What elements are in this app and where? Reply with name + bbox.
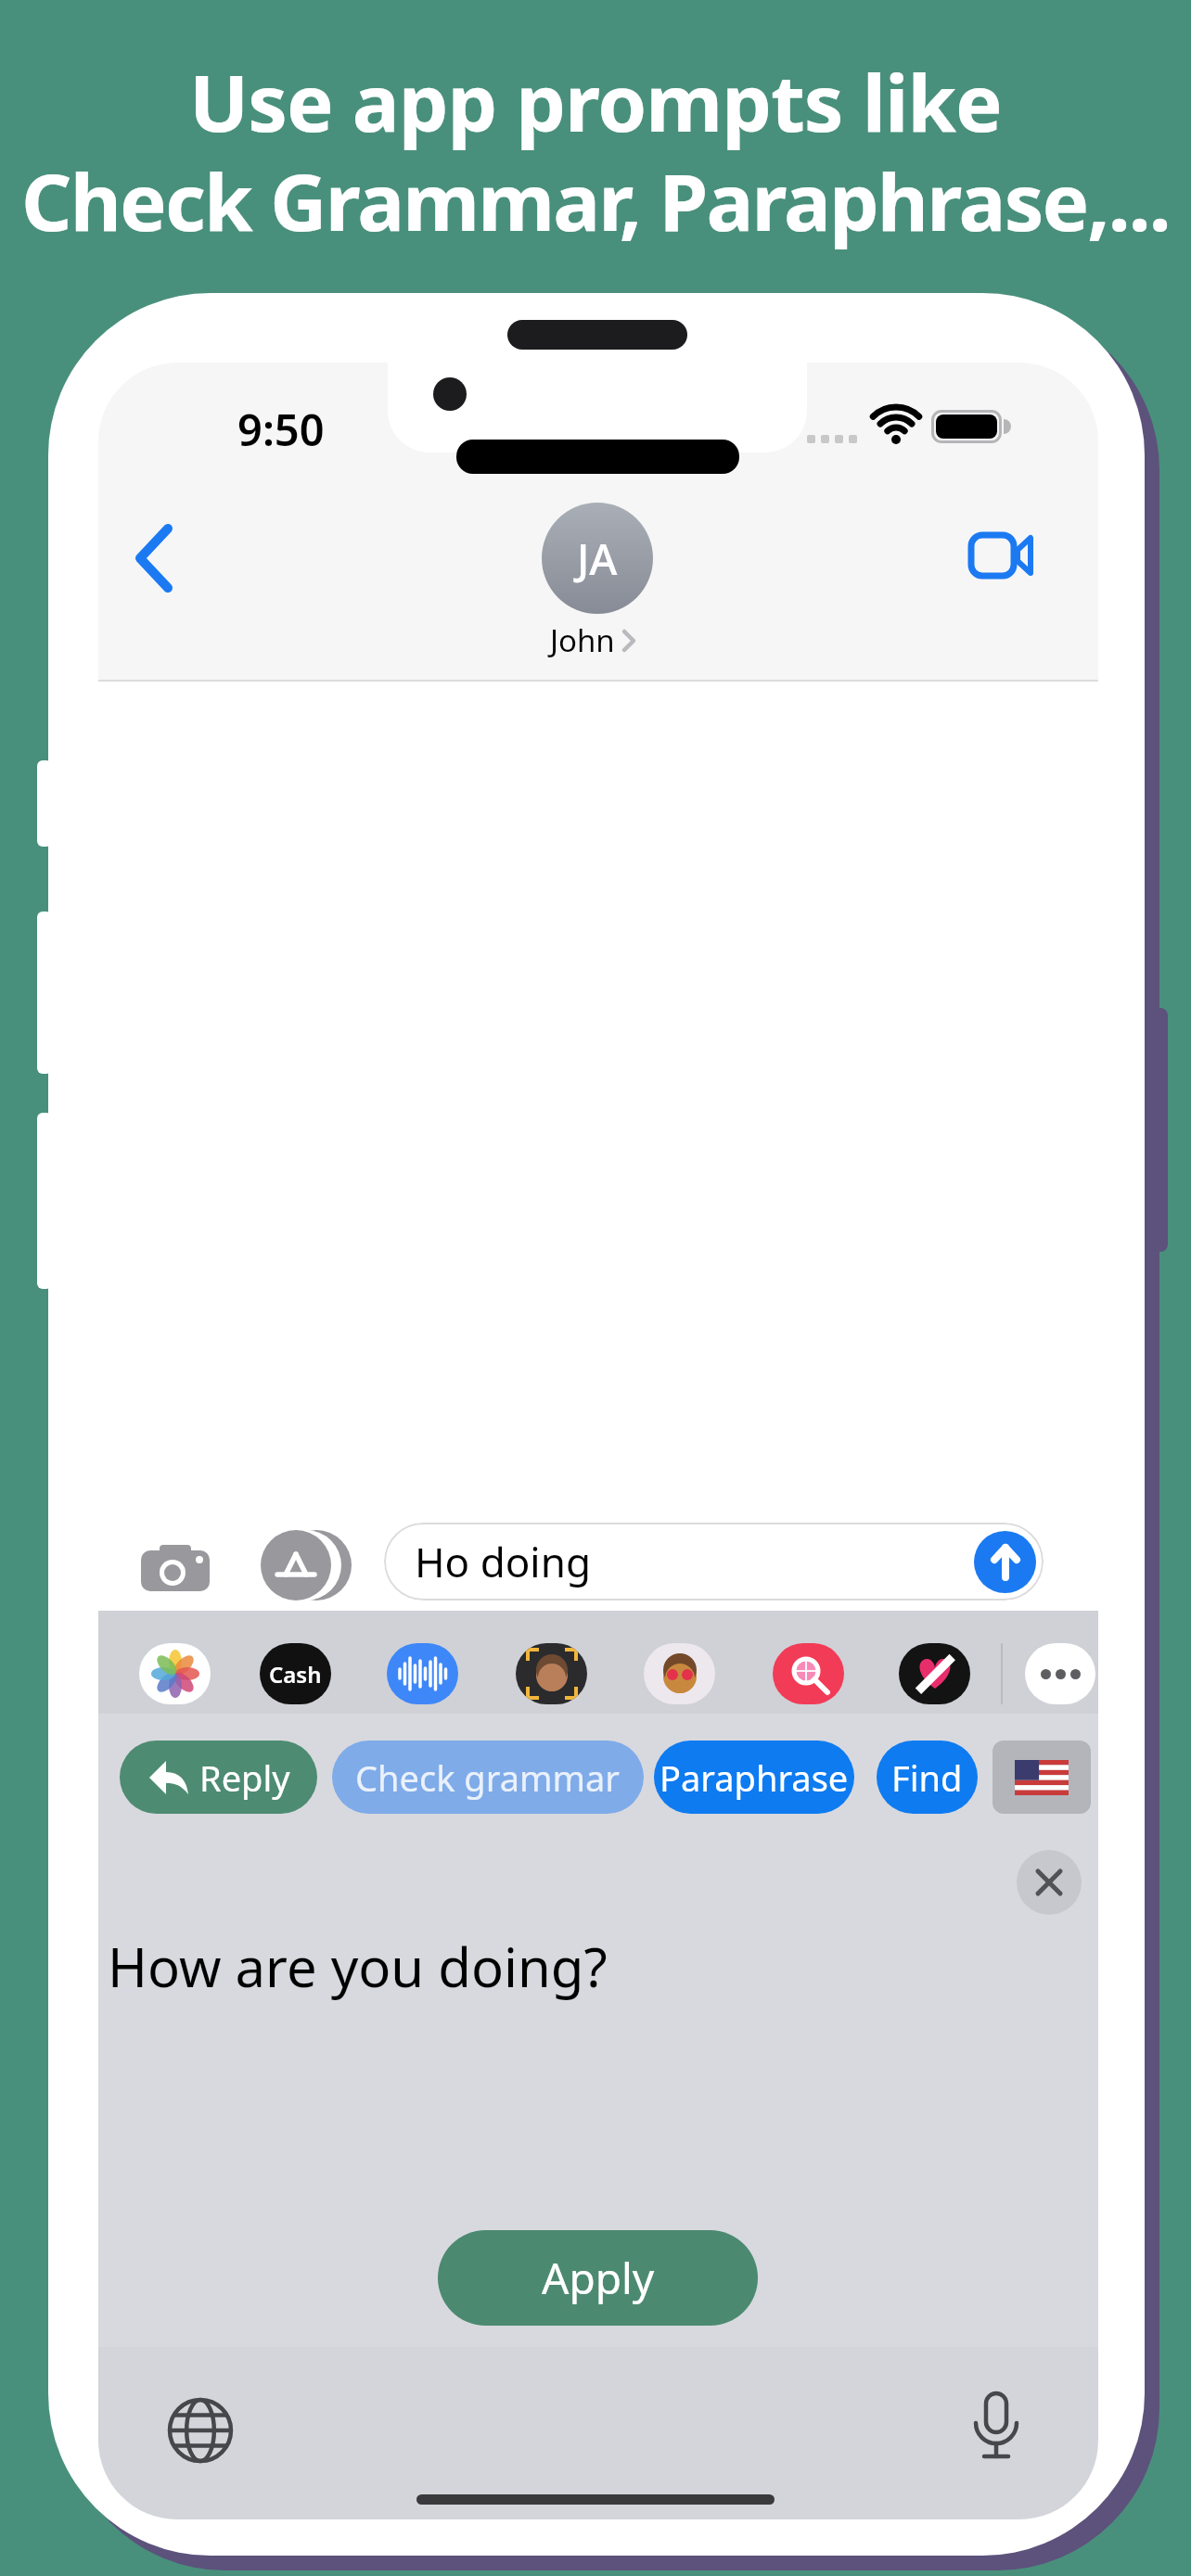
button[interactable] — [773, 1643, 844, 1704]
button[interactable] — [899, 1643, 970, 1704]
staticText: Ho doing — [415, 1534, 591, 1589]
button[interactable]: Reply — [120, 1741, 317, 1814]
staticText: Cash — [269, 1659, 322, 1690]
button[interactable] — [1017, 1850, 1082, 1915]
staticText: How are you doing? — [108, 1930, 608, 2003]
button[interactable]: Check grammar — [332, 1741, 644, 1814]
button[interactable]: Cash — [260, 1643, 331, 1704]
button[interactable] — [974, 1531, 1036, 1593]
staticText: 9:50 — [237, 400, 325, 459]
staticText: Check Grammar, Paraphrase,... — [21, 147, 1170, 254]
staticText: Find — [891, 1753, 963, 1802]
button[interactable] — [117, 511, 191, 604]
button[interactable] — [126, 1529, 224, 1608]
button[interactable] — [1025, 1643, 1095, 1704]
button[interactable] — [387, 1643, 458, 1704]
staticText: Apply — [542, 2249, 655, 2307]
button[interactable]: Ho doing — [384, 1523, 1044, 1600]
button[interactable]: Apply — [438, 2230, 758, 2326]
staticText: JA — [577, 529, 618, 588]
button[interactable] — [154, 2384, 247, 2477]
staticText: Check grammar — [355, 1753, 621, 1802]
button[interactable] — [516, 1643, 587, 1704]
staticText: John — [550, 619, 615, 661]
button[interactable] — [644, 1643, 715, 1704]
button[interactable] — [251, 1522, 353, 1610]
button[interactable] — [947, 2379, 1044, 2481]
button[interactable]: Find — [877, 1741, 978, 1814]
staticText: Paraphrase — [660, 1753, 849, 1802]
staticText: Use app prompts like — [189, 47, 1002, 155]
button[interactable]: JA — [542, 503, 653, 614]
button[interactable] — [992, 1741, 1091, 1814]
staticText: Reply — [199, 1753, 290, 1802]
button[interactable]: Paraphrase — [654, 1741, 854, 1814]
button[interactable] — [139, 1643, 211, 1704]
button[interactable] — [952, 520, 1054, 594]
